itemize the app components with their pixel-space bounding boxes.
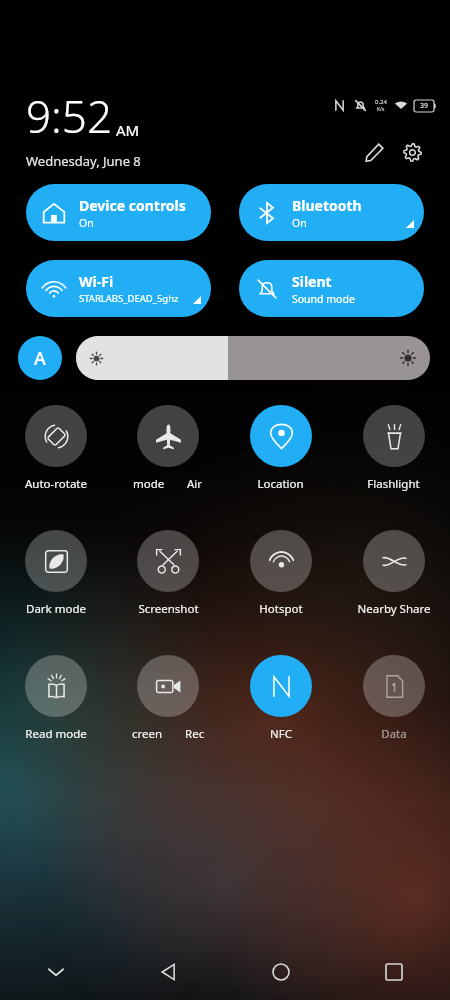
button[interactable]: Collapse bbox=[0, 944, 112, 1000]
staticText: Location bbox=[257, 476, 304, 492]
staticText: Nearby Share bbox=[357, 601, 431, 617]
button[interactable]: Wi-Fi bbox=[26, 260, 211, 317]
button[interactable]: Read mode bbox=[0, 655, 112, 742]
button[interactable]: creen bbox=[112, 655, 224, 742]
staticText: A bbox=[34, 346, 46, 371]
staticText: AM bbox=[116, 120, 140, 140]
staticText: Wi-Fi bbox=[79, 272, 114, 291]
staticText: STARLABS_DEAD_5ghz bbox=[79, 292, 179, 305]
button[interactable]: Flashlight bbox=[337, 405, 450, 492]
staticText: Device controls bbox=[79, 196, 186, 215]
staticText: Sound mode bbox=[292, 292, 355, 306]
button[interactable]: Nearby Share bbox=[337, 530, 450, 617]
button[interactable]: Device controls bbox=[26, 184, 211, 241]
button[interactable]: Bluetooth bbox=[239, 184, 424, 241]
button[interactable]: Dark mode bbox=[0, 530, 112, 617]
staticText: 9:52 bbox=[26, 86, 113, 146]
staticText: Auto-rotate bbox=[25, 476, 87, 492]
button[interactable]: Silent bbox=[239, 260, 424, 317]
staticText: Bluetooth bbox=[292, 196, 362, 215]
staticText: On bbox=[79, 216, 94, 230]
button[interactable]: Recents bbox=[337, 944, 450, 1000]
staticText: Data bbox=[381, 726, 407, 742]
button[interactable]: Screenshot bbox=[112, 530, 224, 617]
staticText: 39 bbox=[420, 101, 429, 111]
button[interactable]: Location bbox=[224, 405, 337, 492]
staticText: 0.24 bbox=[375, 98, 387, 106]
staticText: On bbox=[292, 216, 307, 230]
button[interactable]: Settings bbox=[394, 134, 430, 170]
staticText: Hotspot bbox=[259, 601, 303, 617]
staticText: Rec bbox=[185, 726, 205, 742]
staticText: Silent bbox=[292, 272, 332, 291]
button[interactable]: Auto-rotate bbox=[0, 405, 112, 492]
button[interactable]: Brightness bbox=[76, 336, 430, 380]
staticText: Flashlight bbox=[367, 476, 420, 492]
button[interactable]: Back bbox=[112, 944, 224, 1000]
staticText: Dark mode bbox=[26, 601, 86, 617]
button[interactable]: mode bbox=[112, 405, 224, 492]
button[interactable]: Edit bbox=[356, 134, 392, 170]
staticText: Air bbox=[187, 476, 203, 492]
button[interactable]: Auto brightness bbox=[18, 336, 62, 380]
staticText: creen bbox=[132, 726, 163, 742]
staticText: Read mode bbox=[25, 726, 87, 742]
staticText: Wednesday, June 8 bbox=[26, 152, 141, 170]
button[interactable]: Home bbox=[224, 944, 337, 1000]
staticText: Screenshot bbox=[138, 601, 199, 617]
button[interactable]: Data bbox=[337, 655, 450, 742]
button[interactable]: NFC bbox=[224, 655, 337, 742]
button[interactable]: Hotspot bbox=[224, 530, 337, 617]
staticText: K/s bbox=[377, 106, 385, 113]
staticText: mode bbox=[133, 476, 165, 492]
staticText: NFC bbox=[270, 726, 292, 742]
